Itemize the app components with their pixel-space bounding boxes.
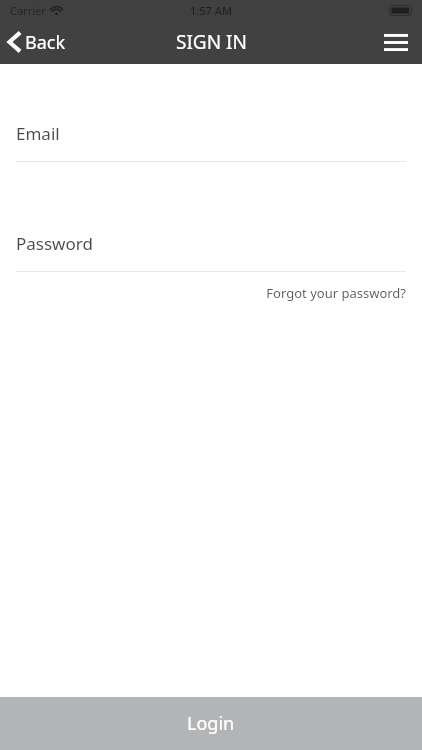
staticText: Forgot your password? [266, 284, 406, 302]
button[interactable]: Password [0, 232, 422, 272]
staticText: SIGN IN [176, 29, 247, 55]
button[interactable]: Back [0, 20, 78, 64]
button[interactable]: Forgot your password? [266, 282, 406, 304]
staticText: Password [16, 232, 93, 255]
button[interactable]: Email [0, 122, 422, 162]
staticText: Login [187, 711, 235, 736]
staticText: Email [16, 122, 60, 145]
staticText: Back [25, 30, 66, 55]
staticText: 1:57 AM [190, 3, 233, 18]
button[interactable]: Menu [370, 20, 422, 64]
staticText: Carrier [10, 3, 46, 18]
button[interactable]: Login [0, 697, 422, 750]
